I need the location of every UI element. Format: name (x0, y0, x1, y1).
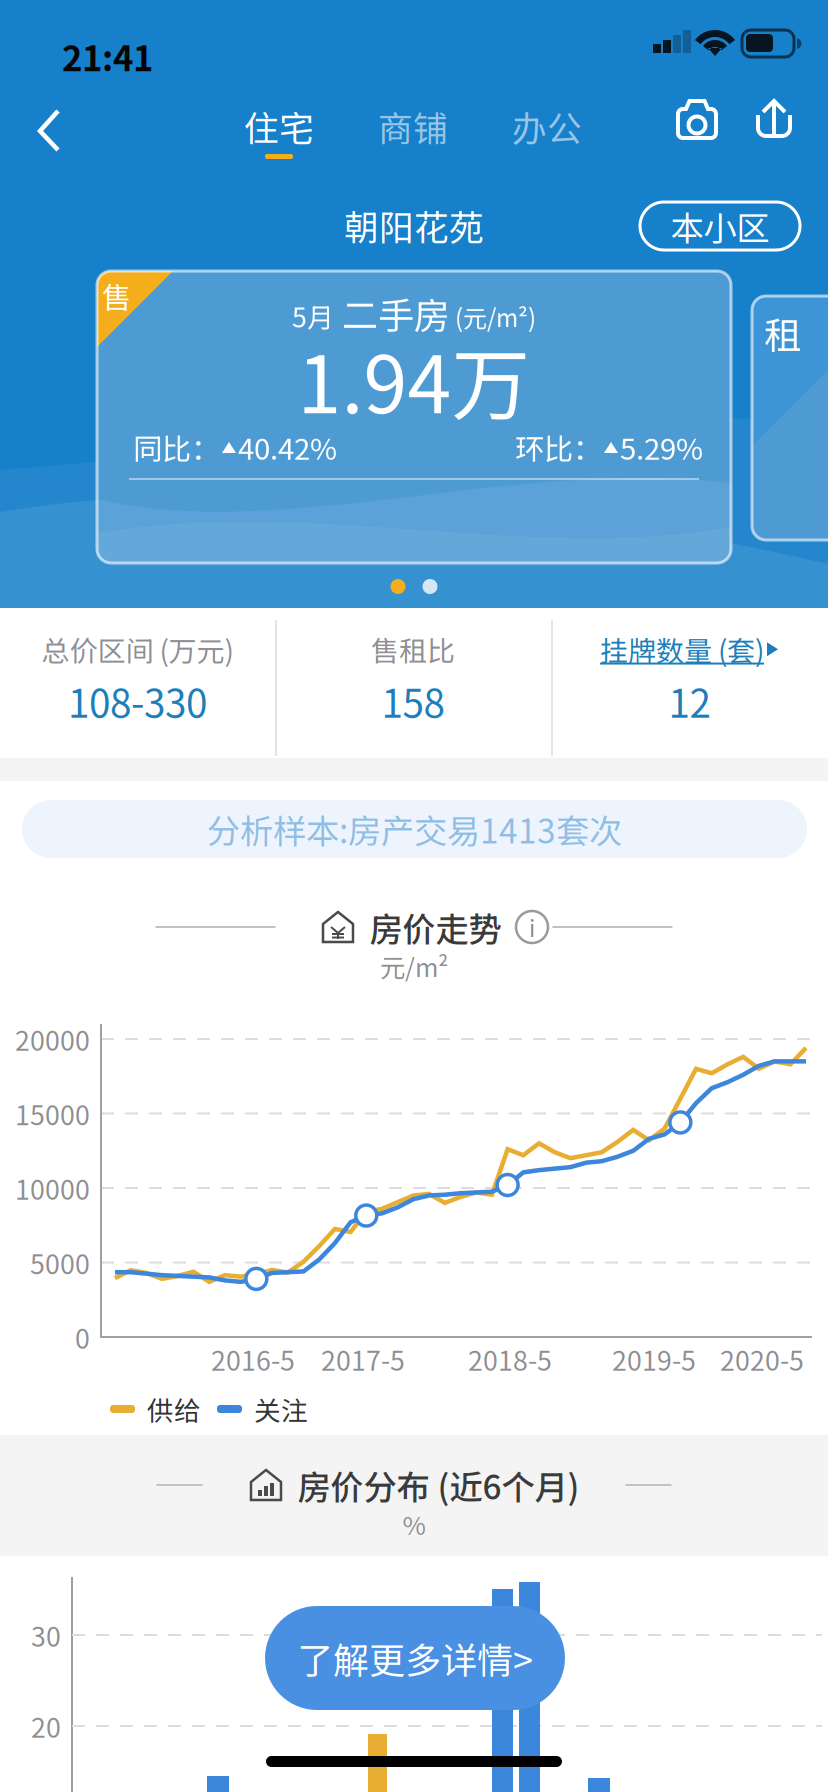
staticText: 10000 (15, 1169, 90, 1207)
staticText: 售租比 (371, 629, 455, 669)
button[interactable]: 办公 (480, 88, 614, 172)
staticText: 2019-5 (612, 1340, 696, 1378)
staticText: 房价分布 (近6个月) (297, 1461, 579, 1509)
button[interactable]: 了解更多详情> (265, 1606, 565, 1710)
staticText: 二手房 (334, 287, 450, 339)
button[interactable]: Back (0, 88, 96, 172)
button[interactable]: 分析样本:房产交易1413套次 (22, 800, 807, 858)
staticText: 朝阳花苑 (344, 200, 484, 250)
staticText: 30 (31, 1616, 61, 1654)
staticText: i (529, 911, 535, 943)
staticText: 5月 (292, 296, 334, 335)
staticText: 了解更多详情> (297, 1632, 533, 1684)
staticText: 总价区间 (万元) (41, 629, 233, 669)
staticText: 2016-5 (211, 1340, 295, 1378)
button[interactable]: 本小区 (640, 202, 800, 250)
button[interactable]: 总价区间 (万元) (0, 608, 275, 758)
staticText: 办公 (512, 101, 582, 151)
staticText: 同比： (133, 426, 220, 468)
staticText: 158 (381, 673, 444, 729)
staticText: 15000 (15, 1094, 90, 1133)
staticText: 2017-5 (321, 1340, 405, 1378)
staticText: 环比： (515, 426, 602, 468)
button[interactable]: Camera (656, 88, 736, 172)
staticText: 1.94万 (297, 322, 530, 436)
staticText: 2020-5 (720, 1340, 804, 1378)
button[interactable]: 商铺 (346, 88, 480, 172)
staticText: 商铺 (378, 101, 448, 151)
staticText: 供给 (147, 1390, 201, 1428)
staticText: 元/m² (380, 948, 448, 984)
staticText: 21:41 (62, 31, 153, 81)
button[interactable]: 住宅 (212, 88, 346, 172)
staticText: 本小区 (670, 202, 769, 250)
staticText: 售 (102, 275, 131, 317)
staticText: 房价走势 (369, 903, 501, 951)
staticText: (元/m²) (450, 299, 536, 334)
button[interactable]: 挂牌数量 (套) (551, 608, 828, 758)
staticText: 住宅 (244, 101, 314, 151)
staticText: % (402, 1506, 425, 1542)
staticText: 挂牌数量 (套) (600, 629, 764, 669)
staticText: 20 (31, 1707, 61, 1745)
button[interactable]: 售租比 (275, 608, 551, 758)
staticText: 12 (668, 673, 710, 729)
staticText: 40.42% (238, 426, 337, 468)
button[interactable]: Share (736, 88, 816, 172)
staticText: 108-330 (68, 673, 207, 729)
staticText: 租 (764, 306, 801, 360)
staticText: 5.29% (620, 426, 703, 468)
staticText: 2018-5 (468, 1340, 552, 1378)
staticText: 5000 (30, 1243, 90, 1282)
staticText: 关注 (254, 1390, 308, 1428)
staticText: 20000 (15, 1020, 90, 1058)
staticText: 0 (75, 1318, 90, 1356)
staticText: 分析样本:房产交易1413套次 (207, 805, 622, 853)
